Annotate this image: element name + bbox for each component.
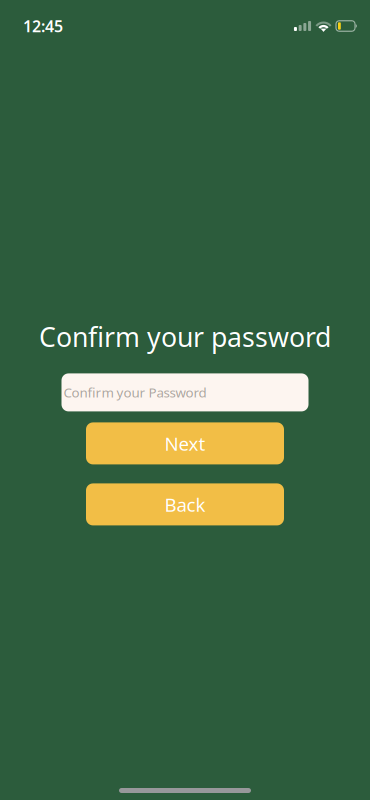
staticText: Confirm your Password: [63, 384, 206, 401]
button[interactable]: Next: [86, 422, 284, 464]
staticText: 12:45: [23, 15, 63, 37]
button[interactable]: Confirm your Password: [61, 373, 308, 411]
staticText: Back: [164, 492, 205, 517]
staticText: Next: [164, 431, 205, 456]
button[interactable]: Back: [86, 483, 284, 525]
staticText: Confirm your password: [39, 319, 331, 354]
